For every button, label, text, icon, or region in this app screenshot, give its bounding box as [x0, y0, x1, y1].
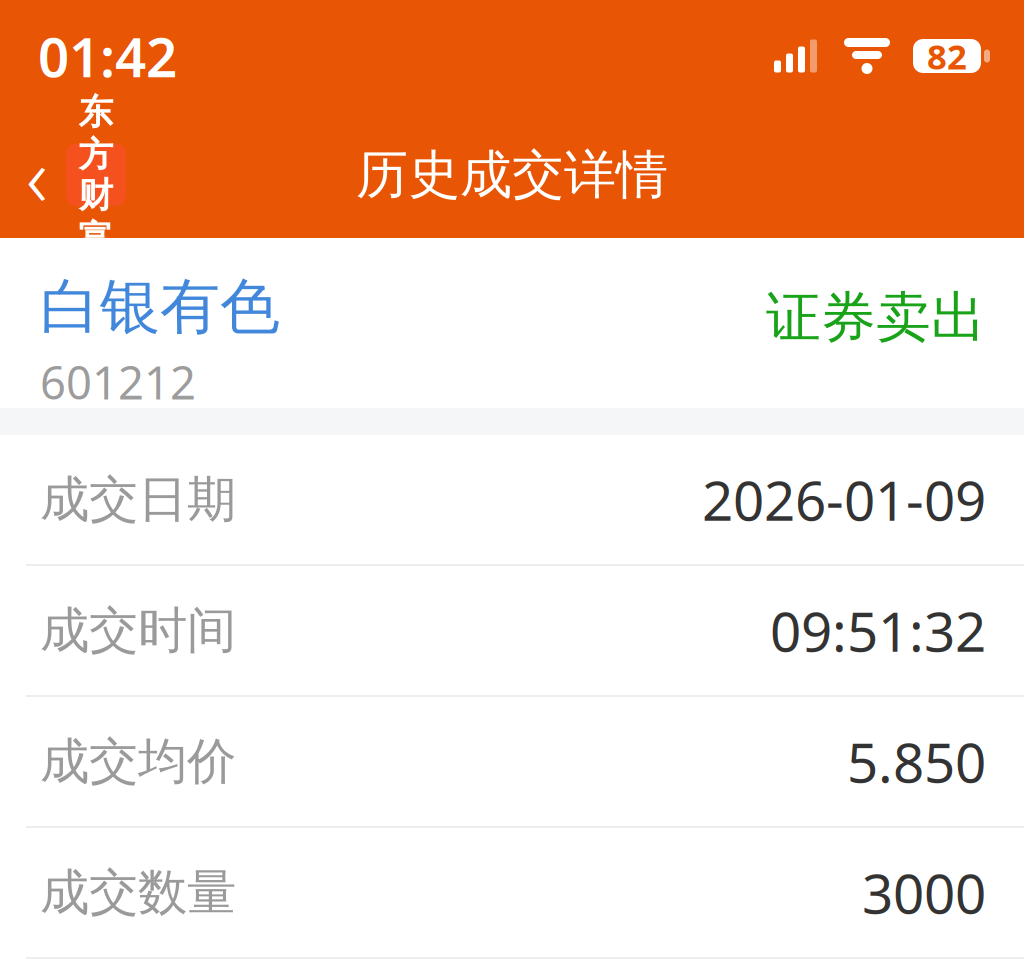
staticText: 东方: [78, 91, 113, 176]
staticText: 成交日期: [40, 469, 236, 530]
staticText: 白银有色: [40, 270, 280, 344]
staticText: 历史成交详情: [356, 143, 668, 207]
staticText: 601212: [40, 352, 196, 412]
staticText: 证券卖出: [766, 284, 986, 351]
staticText: 09:51:32: [770, 594, 986, 667]
button[interactable]: 白银有色: [40, 270, 280, 344]
staticText: 成交均价: [40, 731, 236, 792]
staticText: 5.850: [847, 725, 986, 798]
staticText: 财富: [78, 174, 113, 259]
button[interactable]: Back: [0, 130, 136, 220]
staticText: 2026-01-09: [702, 463, 986, 536]
staticText: 成交时间: [40, 600, 236, 661]
staticText: 成交数量: [40, 862, 236, 923]
staticText: 3000: [862, 856, 986, 929]
staticText: 82: [927, 33, 967, 79]
staticText: 01:42: [38, 20, 177, 92]
staticText: ‹: [26, 120, 48, 230]
